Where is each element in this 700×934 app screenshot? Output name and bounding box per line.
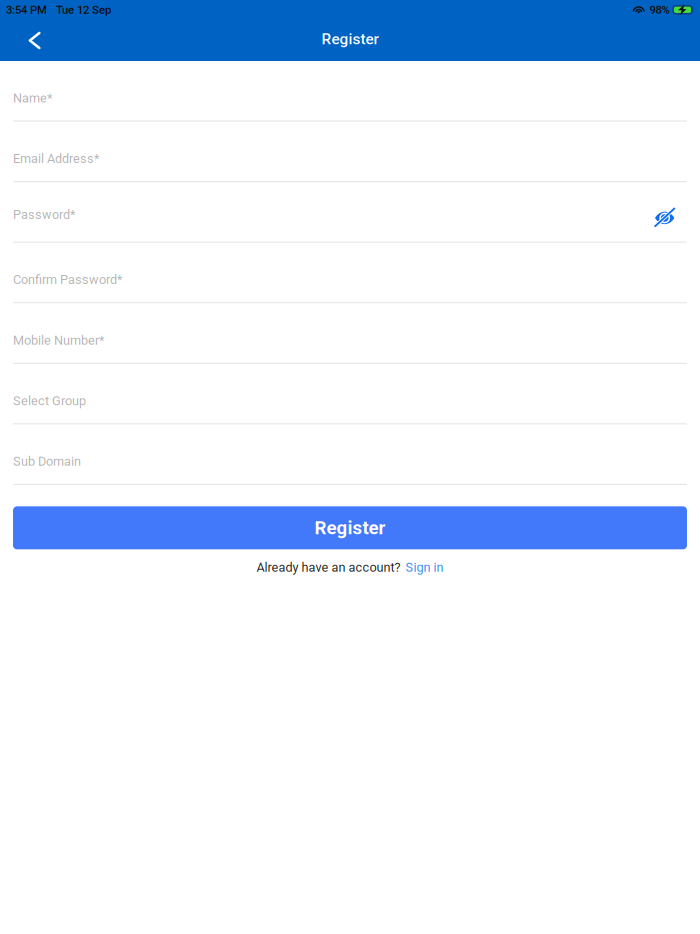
staticText: Sign in — [405, 560, 443, 575]
button[interactable]: Name* — [0, 61, 700, 121]
staticText: Register — [314, 517, 385, 539]
staticText: Select Group — [13, 393, 86, 408]
staticText: Confirm Password* — [13, 272, 122, 287]
staticText: 98% — [649, 3, 669, 17]
staticText: Mobile Number* — [13, 333, 104, 348]
staticText: 3:54 PM — [6, 3, 47, 17]
button[interactable]: Register — [13, 506, 687, 549]
button[interactable]: Show password — [646, 203, 687, 227]
button[interactable]: Mobile Number* — [0, 303, 700, 364]
button[interactable]: Back — [0, 20, 56, 61]
button[interactable]: Email Address* — [0, 121, 700, 182]
staticText: Tue 12 Sep — [56, 3, 111, 17]
staticText: Already have an account? — [256, 560, 400, 575]
button[interactable]: Sub Domain — [0, 424, 700, 485]
staticText: Email Address* — [13, 151, 99, 166]
staticText: Sub Domain — [13, 454, 81, 469]
button[interactable]: Password* — [0, 182, 700, 243]
button[interactable]: Select Group — [0, 364, 700, 424]
button[interactable]: Confirm Password* — [0, 243, 700, 303]
staticText: Password* — [13, 207, 75, 222]
button[interactable]: Sign in — [405, 560, 443, 575]
staticText: Register — [321, 30, 378, 48]
staticText: Name* — [13, 91, 52, 105]
